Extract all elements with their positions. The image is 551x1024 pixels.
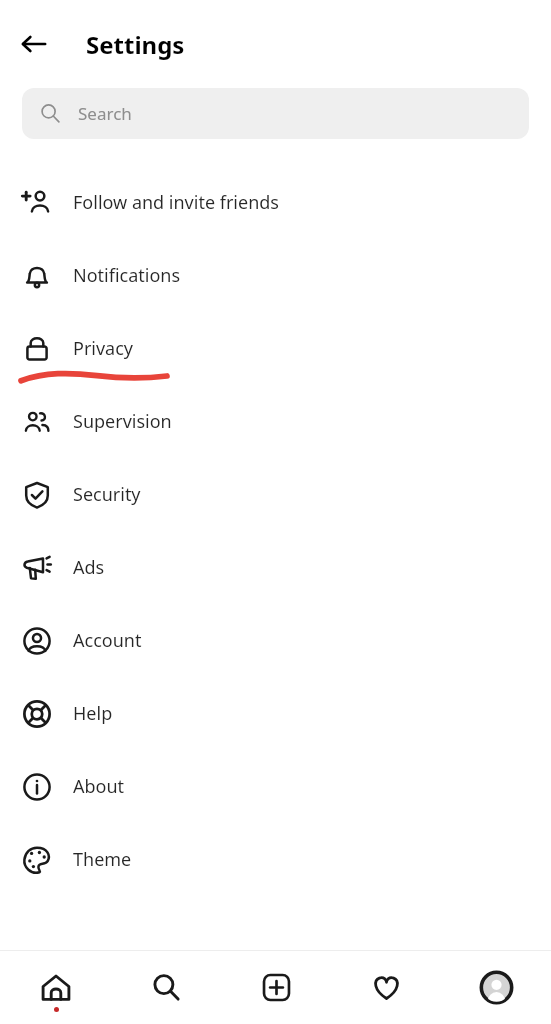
button[interactable]: Privacy <box>0 312 551 385</box>
button[interactable]: Account <box>0 604 551 677</box>
button[interactable]: Ads <box>0 531 551 604</box>
button[interactable]: Search <box>22 88 529 139</box>
button[interactable]: Back <box>10 20 58 68</box>
button[interactable]: Theme <box>0 823 551 896</box>
staticText: About <box>73 774 125 799</box>
button[interactable]: Notifications <box>0 239 551 312</box>
button[interactable]: Security <box>0 458 551 531</box>
staticText: Help <box>73 701 113 726</box>
staticText: Ads <box>73 555 105 580</box>
button[interactable]: Help <box>0 677 551 750</box>
button[interactable]: About <box>0 750 551 823</box>
staticText: Theme <box>73 847 132 872</box>
button[interactable]: Search <box>111 951 221 1024</box>
staticText: Security <box>73 482 141 507</box>
staticText: Follow and invite friends <box>73 190 279 215</box>
button[interactable]: Activity <box>331 951 441 1024</box>
button[interactable]: Home <box>0 951 111 1024</box>
staticText: Privacy <box>73 336 134 361</box>
button[interactable]: Follow and invite friends <box>0 166 551 239</box>
button[interactable]: Create <box>221 951 331 1024</box>
staticText: Account <box>73 628 142 653</box>
staticText: Notifications <box>73 263 181 288</box>
staticText: Search <box>78 102 132 125</box>
button[interactable]: Supervision <box>0 385 551 458</box>
button[interactable]: Profile <box>441 951 551 1024</box>
staticText: Settings <box>86 28 185 61</box>
staticText: Supervision <box>73 409 172 434</box>
